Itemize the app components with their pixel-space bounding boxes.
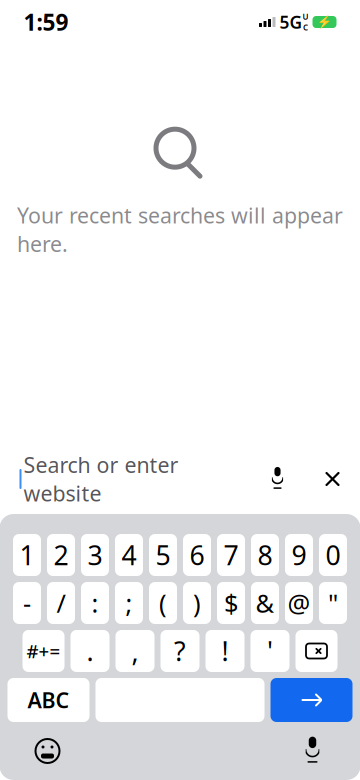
button[interactable]: .	[70, 630, 109, 672]
staticText: @	[287, 586, 310, 620]
button[interactable]: @	[285, 582, 313, 624]
button[interactable]: 9	[285, 534, 313, 576]
button[interactable]: 7	[217, 534, 245, 576]
staticText: ?	[174, 633, 186, 669]
staticText: 9	[291, 537, 306, 573]
staticText: 1:59	[23, 7, 68, 37]
button[interactable]: 3	[81, 534, 109, 576]
staticText: ;	[125, 586, 132, 620]
staticText: #+=	[26, 639, 60, 663]
staticText: :	[91, 586, 98, 620]
button[interactable]: $	[217, 582, 245, 624]
button[interactable]: Go	[270, 678, 352, 722]
button[interactable]: -	[13, 582, 41, 624]
staticText: "	[328, 586, 338, 620]
staticText: !	[221, 633, 228, 669]
staticText: 2	[53, 537, 68, 573]
staticText: 4	[121, 537, 136, 573]
staticText: ⚡	[317, 15, 332, 29]
button[interactable]: 5	[149, 534, 177, 576]
button[interactable]: 4	[115, 534, 143, 576]
staticText: /	[56, 586, 65, 620]
staticText: 3	[87, 537, 102, 573]
staticText: -	[23, 586, 31, 620]
staticText: Search or enter website	[23, 451, 178, 507]
button[interactable]: 0	[319, 534, 347, 576]
staticText: 8	[257, 537, 272, 573]
staticText: .	[86, 633, 93, 669]
staticText: &	[255, 586, 274, 620]
staticText: C	[303, 22, 308, 33]
staticText: )	[193, 586, 201, 620]
staticText: ,	[131, 633, 138, 669]
button[interactable]: ABC	[7, 678, 89, 722]
button[interactable]: Delete	[295, 630, 337, 672]
staticText: 7	[223, 537, 238, 573]
staticText: $	[224, 586, 238, 620]
button[interactable]: ?	[160, 630, 199, 672]
button[interactable]: 6	[183, 534, 211, 576]
button[interactable]: 2	[47, 534, 75, 576]
staticText: ABC	[27, 686, 69, 714]
button[interactable]: Emoji	[31, 735, 63, 767]
button[interactable]: Close	[312, 459, 352, 499]
button[interactable]: ;	[115, 582, 143, 624]
button[interactable]: /	[47, 582, 75, 624]
staticText: U	[302, 11, 308, 22]
staticText: 6	[189, 537, 204, 573]
staticText: 5G	[279, 10, 302, 33]
button[interactable]: Voice search	[264, 464, 290, 494]
staticText: 1	[19, 537, 34, 573]
button[interactable]: '	[250, 630, 289, 672]
staticText: Your recent searches will appear here.	[17, 201, 343, 258]
button[interactable]: &	[251, 582, 279, 624]
button[interactable]: 1	[13, 534, 41, 576]
button[interactable]: :	[81, 582, 109, 624]
staticText: (	[159, 586, 167, 620]
button[interactable]: (	[149, 582, 177, 624]
staticText: 5	[155, 537, 170, 573]
button[interactable]: "	[319, 582, 347, 624]
staticText: '	[267, 633, 273, 669]
staticText: 0	[325, 537, 340, 573]
button[interactable]: #+=	[22, 630, 64, 672]
button[interactable]: ,	[115, 630, 154, 672]
button[interactable]: !	[205, 630, 244, 672]
button[interactable]: )	[183, 582, 211, 624]
button[interactable]: 8	[251, 534, 279, 576]
button[interactable]: Dictation	[296, 735, 328, 767]
